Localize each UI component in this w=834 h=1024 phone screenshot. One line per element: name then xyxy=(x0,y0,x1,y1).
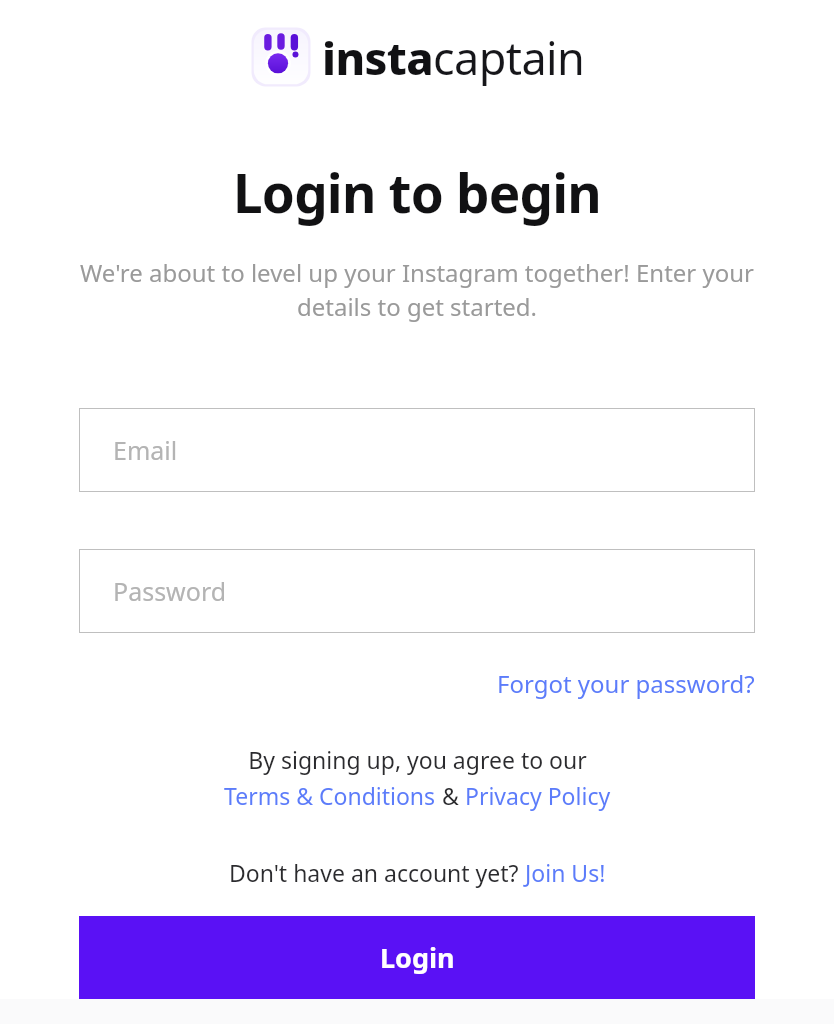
staticText: Login xyxy=(380,939,455,976)
staticText: Login to begin xyxy=(233,156,601,228)
staticText: By signing up, you agree to our xyxy=(248,744,587,775)
button[interactable]: instacaptain logo xyxy=(246,26,589,88)
button[interactable]: Terms & Conditions xyxy=(224,780,436,811)
staticText: instacaptain xyxy=(322,27,585,88)
staticText: Don't have an account yet? xyxy=(229,857,525,888)
staticText: We're about to level up your Instagram t… xyxy=(72,256,762,323)
staticText: Email xyxy=(113,433,178,467)
button[interactable]: Join Us! xyxy=(525,857,606,888)
button[interactable]: Privacy Policy xyxy=(465,780,611,811)
button[interactable]: Password input xyxy=(79,549,755,633)
staticText: Password xyxy=(113,574,227,608)
button[interactable]: Forgot your password? xyxy=(497,665,755,702)
button[interactable]: Login xyxy=(79,916,755,999)
button[interactable]: Email input xyxy=(79,408,755,492)
staticText: & xyxy=(436,780,465,811)
